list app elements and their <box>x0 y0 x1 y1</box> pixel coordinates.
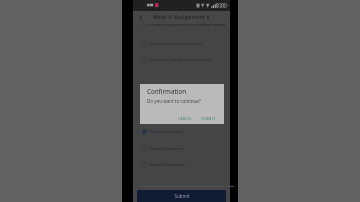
staticText: Submit <box>174 193 190 199</box>
button[interactable]: To control direction of interview <box>142 55 210 64</box>
staticText: SUBMIT <box>201 116 216 121</box>
button[interactable]: Back <box>136 13 145 22</box>
staticText: In-depth exploration of complex subject … <box>149 24 230 28</box>
button[interactable]: In-depth exploration of complex subject … <box>142 24 230 29</box>
staticText: To keep the interview short <box>149 41 202 47</box>
staticText: Confirmation <box>147 87 187 95</box>
staticText: CANCEL <box>178 116 193 121</box>
staticText: To control direction of interview <box>149 57 210 63</box>
staticText: Week 9: Assignment 9 <box>153 14 210 21</box>
button[interactable]: Submit <box>137 190 226 202</box>
button[interactable]: Medial Conference <box>142 160 186 169</box>
staticText: Do you want to continue? <box>147 98 201 104</box>
staticText: Press Conference <box>149 146 183 152</box>
button[interactable]: Press Conference <box>142 144 183 153</box>
staticText: Medial Conference <box>149 162 186 168</box>
staticText: Press Conference <box>149 129 183 135</box>
button[interactable]: Press Conference <box>142 127 183 136</box>
button[interactable]: To keep the interview short <box>142 39 202 48</box>
button[interactable]: SUBMIT <box>199 114 218 123</box>
button[interactable]: CANCEL <box>176 114 195 123</box>
